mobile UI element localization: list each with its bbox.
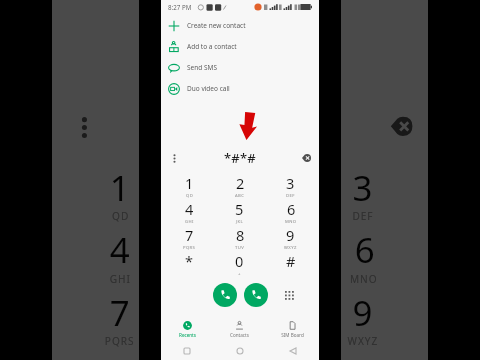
staticText: 1 bbox=[110, 162, 131, 210]
staticText: MNO bbox=[350, 273, 379, 287]
button[interactable]: 5 bbox=[214, 199, 265, 225]
button[interactable]: More options bbox=[167, 151, 181, 165]
button[interactable]: * bbox=[59, 350, 179, 360]
staticText: WXYZ bbox=[348, 335, 379, 350]
button[interactable]: SIM Board bbox=[266, 319, 319, 340]
button[interactable]: 9 bbox=[265, 225, 316, 251]
button[interactable]: 9 bbox=[302, 287, 424, 350]
staticText: 5 bbox=[235, 199, 244, 219]
button[interactable]: Create new contact bbox=[161, 15, 319, 36]
button[interactable]: Backspace bbox=[299, 151, 313, 165]
button[interactable]: 5 bbox=[179, 225, 302, 287]
staticText: 8 bbox=[232, 287, 254, 335]
button[interactable]: 3 bbox=[265, 173, 316, 199]
staticText: 2 bbox=[232, 162, 254, 210]
staticText: ABC bbox=[230, 210, 254, 225]
staticText: 4 bbox=[110, 225, 131, 273]
staticText: 0 bbox=[235, 251, 244, 271]
staticText: WXYZ bbox=[284, 245, 297, 251]
staticText: PQRS bbox=[105, 335, 136, 350]
staticText: QD bbox=[186, 193, 194, 199]
button[interactable]: * bbox=[164, 251, 214, 277]
staticText: Add to a contact bbox=[187, 42, 237, 51]
staticText: 3 bbox=[286, 173, 295, 193]
staticText: Duo video call bbox=[187, 84, 230, 93]
button[interactable]: 2 bbox=[179, 162, 302, 225]
staticText: 9 bbox=[352, 287, 374, 335]
staticText: 9 bbox=[286, 225, 295, 245]
button[interactable]: Contacts bbox=[213, 319, 266, 340]
staticText: 2 bbox=[236, 173, 245, 193]
staticText: 8:27 PM bbox=[168, 3, 192, 11]
staticText: 7 bbox=[110, 287, 131, 335]
staticText: Recents bbox=[179, 332, 196, 338]
button[interactable]: # bbox=[302, 350, 424, 360]
staticText: JKL bbox=[232, 273, 251, 287]
staticText: *#*# bbox=[224, 149, 256, 167]
staticText: GHI bbox=[185, 219, 194, 225]
button[interactable]: Recents bbox=[161, 319, 213, 340]
staticText: Create new contact bbox=[187, 21, 246, 30]
staticText: 0 bbox=[230, 350, 251, 360]
button[interactable]: Back bbox=[266, 340, 319, 360]
staticText: DEF bbox=[352, 210, 374, 225]
staticText: TUV bbox=[230, 335, 254, 350]
button[interactable]: # bbox=[265, 251, 316, 277]
staticText: SIM Board bbox=[281, 332, 304, 338]
other: Arrow pointing down bbox=[235, 112, 257, 140]
staticText: 7 bbox=[185, 225, 194, 245]
staticText: Contacts bbox=[230, 332, 249, 338]
staticText: # bbox=[286, 251, 296, 271]
staticText: DEF bbox=[286, 193, 295, 199]
button[interactable]: 3 bbox=[302, 162, 424, 225]
button[interactable]: 7 bbox=[164, 225, 214, 251]
staticText: + bbox=[238, 271, 241, 277]
staticText: 8 bbox=[236, 225, 245, 245]
button[interactable]: 2 bbox=[214, 173, 265, 199]
button[interactable]: 6 bbox=[265, 199, 316, 225]
button[interactable]: Send SMS bbox=[161, 57, 319, 78]
staticText: MNO bbox=[285, 219, 297, 225]
staticText: JKL bbox=[236, 219, 244, 225]
button[interactable]: 6 bbox=[302, 225, 424, 287]
staticText: PQRS bbox=[183, 245, 196, 251]
staticText: 3 bbox=[352, 162, 374, 210]
button[interactable]: 1 bbox=[59, 162, 179, 225]
staticText: 5 bbox=[230, 225, 251, 273]
staticText: TUV bbox=[235, 245, 245, 251]
button[interactable]: 7 bbox=[59, 287, 179, 350]
button[interactable]: Backspace bbox=[384, 110, 417, 143]
button[interactable]: More options bbox=[66, 110, 100, 143]
staticText: 1 bbox=[185, 173, 194, 193]
staticText: ABC bbox=[235, 193, 245, 199]
button[interactable]: 0 bbox=[214, 251, 265, 277]
staticText: *#*# bbox=[203, 105, 280, 148]
button[interactable]: Call bbox=[244, 283, 268, 307]
button[interactable]: Add to a contact bbox=[161, 36, 319, 57]
button[interactable]: 4 bbox=[164, 199, 214, 225]
staticText: 4 bbox=[185, 199, 194, 219]
staticText: 6 bbox=[355, 225, 376, 273]
staticText: GHI bbox=[110, 273, 131, 287]
staticText: 6 bbox=[287, 199, 296, 219]
button[interactable]: 1 bbox=[164, 173, 214, 199]
button[interactable]: Call bbox=[213, 283, 237, 307]
staticText: * bbox=[185, 251, 193, 271]
button[interactable]: Duo video call bbox=[161, 78, 319, 99]
button[interactable]: 0 bbox=[179, 350, 302, 360]
button[interactable]: 8 bbox=[179, 287, 302, 350]
button[interactable]: 4 bbox=[59, 225, 179, 287]
button[interactable]: 8 bbox=[214, 225, 265, 251]
button[interactable]: Dialpad bbox=[283, 289, 295, 301]
staticText: QD bbox=[112, 210, 131, 225]
staticText: Send SMS bbox=[187, 63, 217, 72]
button[interactable]: Home bbox=[213, 340, 266, 360]
button[interactable]: Recent apps bbox=[161, 340, 213, 360]
